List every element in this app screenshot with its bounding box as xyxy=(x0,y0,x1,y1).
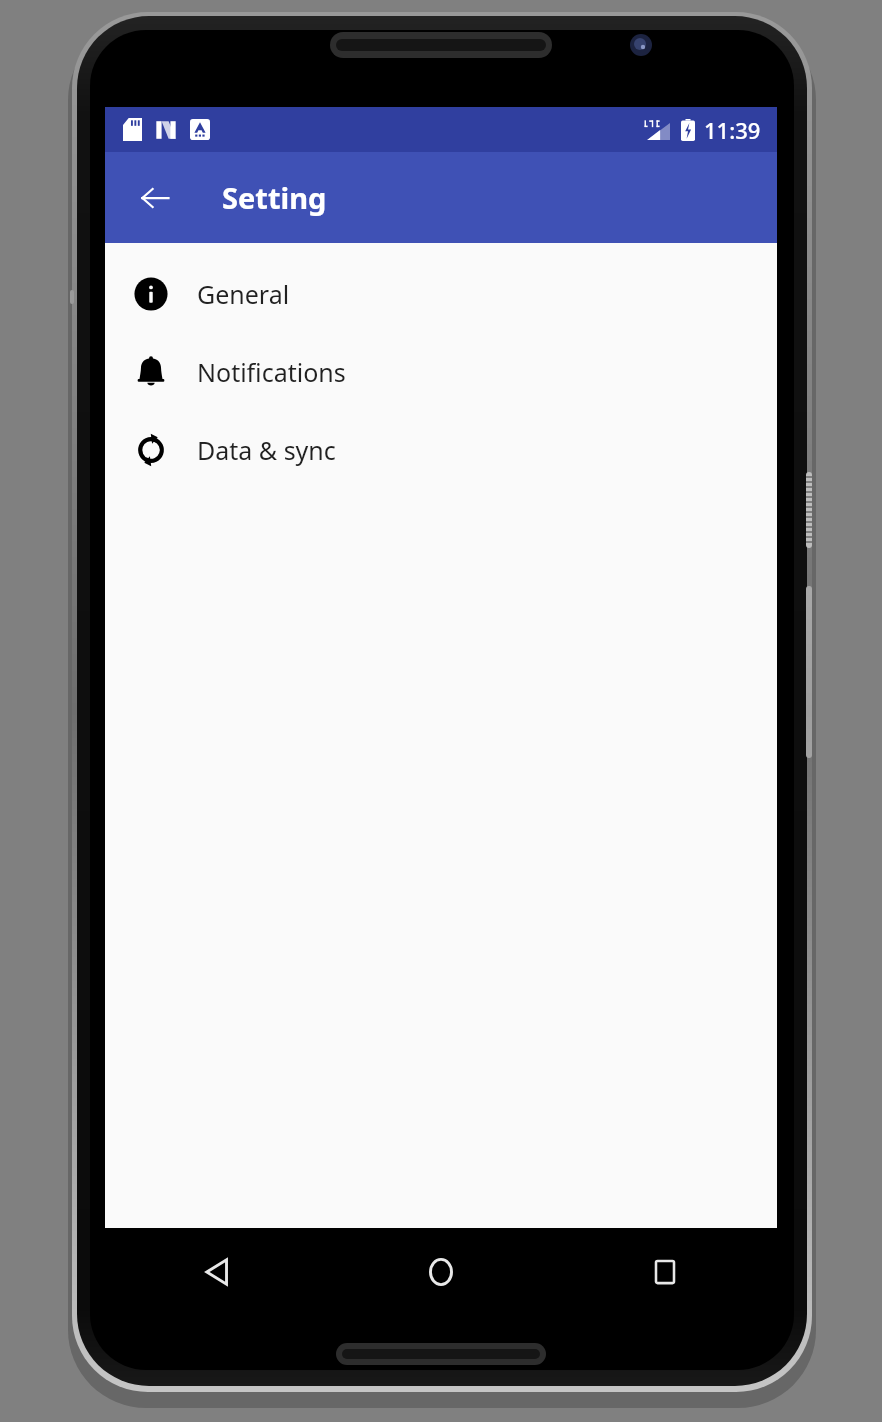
staticText: 11:39 xyxy=(704,115,761,145)
button[interactable]: Back xyxy=(105,1228,329,1315)
button[interactable]: Back xyxy=(127,170,183,226)
button[interactable]: Data & sync xyxy=(105,411,777,489)
button[interactable]: General xyxy=(105,255,777,333)
staticText: General xyxy=(197,277,290,311)
staticText: Setting xyxy=(222,178,327,217)
button[interactable]: Notifications xyxy=(105,333,777,411)
staticText: Data & sync xyxy=(197,433,336,467)
button[interactable]: Recent apps xyxy=(553,1228,777,1315)
staticText: Notifications xyxy=(197,355,346,389)
button[interactable]: Home xyxy=(329,1228,553,1315)
